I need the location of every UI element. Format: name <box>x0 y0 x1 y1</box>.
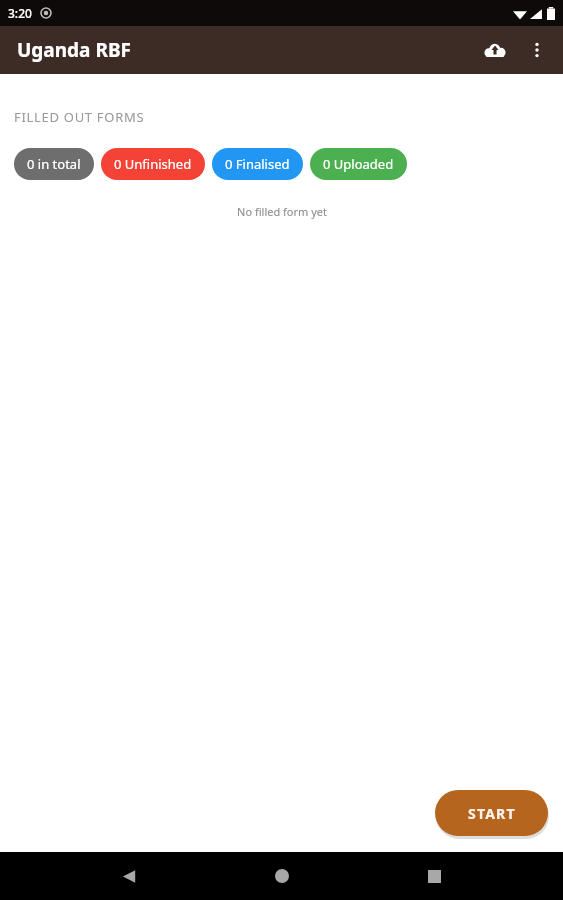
button[interactable]: 0 Unfinished <box>101 148 205 180</box>
staticText: Uganda RBF <box>17 37 131 63</box>
button[interactable]: Upload <box>473 28 517 72</box>
staticText: 0 in total <box>27 155 81 173</box>
button[interactable]: 0 Finalised <box>212 148 303 180</box>
button[interactable]: 0 Uploaded <box>310 148 407 180</box>
button[interactable]: More options <box>517 30 557 70</box>
button[interactable]: Home <box>258 852 306 900</box>
button[interactable]: 0 in total <box>14 148 94 180</box>
staticText: START <box>468 804 516 823</box>
staticText: No filled form yet <box>237 204 327 219</box>
staticText: 3:20 <box>8 5 32 21</box>
staticText: 0 Uploaded <box>323 155 394 173</box>
button[interactable]: START <box>435 790 548 836</box>
staticText: FILLED OUT FORMS <box>14 108 145 126</box>
staticText: 0 Unfinished <box>114 155 192 173</box>
button[interactable]: Back <box>105 852 153 900</box>
staticText: 0 Finalised <box>225 155 290 173</box>
button[interactable]: Recent apps <box>410 852 458 900</box>
